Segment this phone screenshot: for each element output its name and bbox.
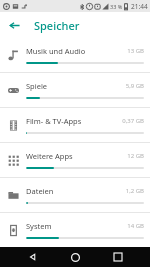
staticText: Spiele bbox=[26, 81, 48, 91]
button[interactable]: Startbildschirm bbox=[65, 247, 85, 267]
staticText: Film- & TV-Apps bbox=[26, 116, 82, 126]
staticText: System bbox=[26, 221, 52, 231]
staticText: 12 GB bbox=[127, 152, 144, 160]
button[interactable]: Musik und Audio bbox=[0, 38, 150, 72]
staticText: 1,2 GB bbox=[125, 187, 144, 195]
staticText: Weitere Apps bbox=[26, 151, 73, 161]
button[interactable]: Weitere Apps bbox=[0, 143, 150, 177]
button[interactable]: Zurück bbox=[3, 14, 25, 36]
staticText: Speicher bbox=[34, 18, 80, 33]
staticText: 14 GB bbox=[127, 222, 144, 230]
staticText: 13 GB bbox=[127, 47, 144, 55]
button[interactable]: Spiele bbox=[0, 73, 150, 107]
staticText: 33 % bbox=[110, 3, 123, 10]
staticText: 5,9 GB bbox=[125, 82, 144, 90]
button[interactable]: Übersicht bbox=[108, 247, 128, 267]
staticText: 21:44 bbox=[131, 2, 148, 11]
staticText: Musik und Audio bbox=[26, 46, 86, 56]
button[interactable]: Zurück bbox=[23, 247, 43, 267]
button[interactable]: Dateien bbox=[0, 178, 150, 212]
button[interactable]: System bbox=[0, 213, 150, 247]
staticText: Dateien bbox=[26, 186, 54, 196]
staticText: 0,37 GB bbox=[122, 117, 144, 125]
button[interactable]: Film- & TV-Apps bbox=[0, 108, 150, 142]
